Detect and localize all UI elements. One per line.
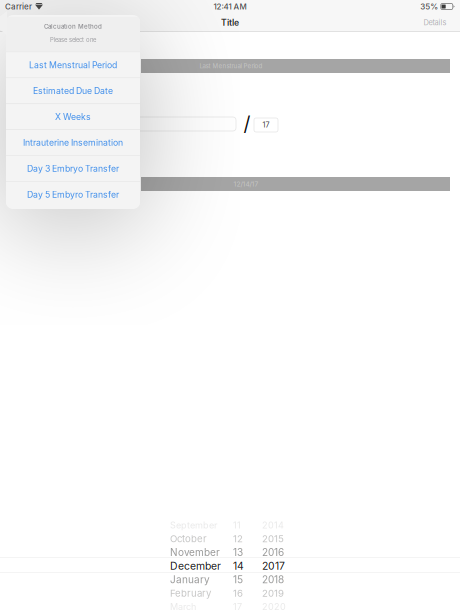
staticText: Estimated Due Date [33, 86, 113, 96]
staticText: 2014 [262, 520, 284, 531]
staticText: 17 [233, 601, 242, 612]
staticText: Please select one [50, 36, 96, 43]
staticText: Carrier [5, 2, 32, 11]
staticText: October [170, 533, 207, 545]
staticText: March [170, 601, 196, 612]
staticText: 12:41 AM [213, 2, 246, 11]
button[interactable]: 12/14/17 [141, 177, 450, 191]
staticText: 2015 [262, 533, 284, 545]
staticText: Day 3 Embryo Transfer [27, 163, 119, 174]
button[interactable]: Last Menstrual Period [141, 59, 450, 73]
staticText: 12/14/17 [233, 180, 258, 188]
staticText: 2018 [262, 574, 284, 586]
button[interactable]: X Weeks [6, 104, 140, 129]
button[interactable]: Last Menstrual Period [6, 52, 140, 78]
staticText: 14 [233, 560, 244, 572]
staticText: Title [221, 17, 239, 28]
staticText: / [243, 112, 250, 136]
button[interactable]: Day 3 Embryo Transfer [6, 156, 140, 181]
button[interactable]: Intrauterine Insemination [6, 130, 140, 155]
button[interactable]: Estimated Due Date [6, 78, 140, 104]
staticText: 12 [233, 533, 243, 545]
staticText: Calcuation Method [44, 23, 102, 30]
button[interactable]: Details [419, 13, 451, 32]
staticText: Day 5 Embyro Transfer [27, 189, 119, 200]
staticText: Last Menstrual Period [199, 62, 262, 70]
staticText: 2017 [262, 560, 285, 572]
staticText: X Weeks [55, 112, 91, 122]
staticText: 35% [420, 2, 438, 11]
staticText: 17 [262, 121, 269, 129]
staticText: Last Menstrual Period [29, 60, 117, 70]
staticText: September [170, 520, 217, 531]
staticText: February [170, 587, 211, 599]
staticText: Details [423, 18, 446, 27]
button[interactable]: Day 5 Embyro Transfer [6, 182, 140, 207]
staticText: Intrauterine Insemination [23, 137, 123, 148]
staticText: 16 [233, 587, 243, 599]
staticText: 2020 [262, 601, 286, 612]
staticText: 11 [233, 520, 241, 531]
staticText: November [170, 546, 220, 558]
staticText: 2016 [262, 546, 284, 558]
staticText: 2019 [262, 587, 284, 599]
staticText: December [170, 560, 221, 572]
staticText: 15 [233, 574, 243, 586]
staticText: January [170, 574, 210, 586]
staticText: 13 [233, 546, 243, 558]
